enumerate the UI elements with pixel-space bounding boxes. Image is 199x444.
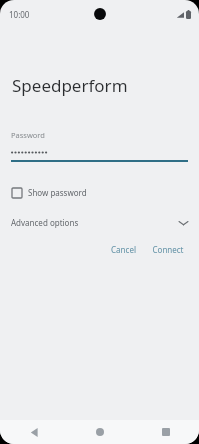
button[interactable]: Recent apps bbox=[133, 420, 199, 444]
staticText: Connect bbox=[152, 244, 184, 255]
staticText: Show password bbox=[28, 187, 87, 198]
button[interactable]: Back bbox=[0, 420, 67, 444]
button[interactable]: Connect bbox=[146, 240, 190, 259]
staticText: Cancel bbox=[111, 244, 136, 255]
button[interactable]: Password bbox=[11, 130, 188, 162]
button[interactable]: Advanced options bbox=[0, 212, 199, 233]
staticText: 10:00 bbox=[9, 9, 30, 20]
button[interactable]: Show password bbox=[11, 185, 88, 200]
staticText: Speedperform bbox=[12, 74, 128, 97]
staticText: Advanced options bbox=[11, 217, 79, 228]
button[interactable]: Home bbox=[67, 420, 133, 444]
staticText: Password bbox=[11, 130, 45, 140]
button[interactable]: Cancel bbox=[105, 240, 142, 259]
other: Expand advanced options bbox=[179, 220, 188, 226]
